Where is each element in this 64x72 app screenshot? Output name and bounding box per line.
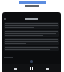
button[interactable] <box>4 38 59 45</box>
button[interactable]: Settings <box>45 66 50 71</box>
button[interactable] <box>4 46 59 51</box>
button[interactable] <box>4 22 59 29</box>
button[interactable]: Home <box>13 66 18 71</box>
button[interactable] <box>4 30 59 37</box>
button[interactable]: Record <box>30 60 33 63</box>
button[interactable]: Pause <box>29 66 34 71</box>
